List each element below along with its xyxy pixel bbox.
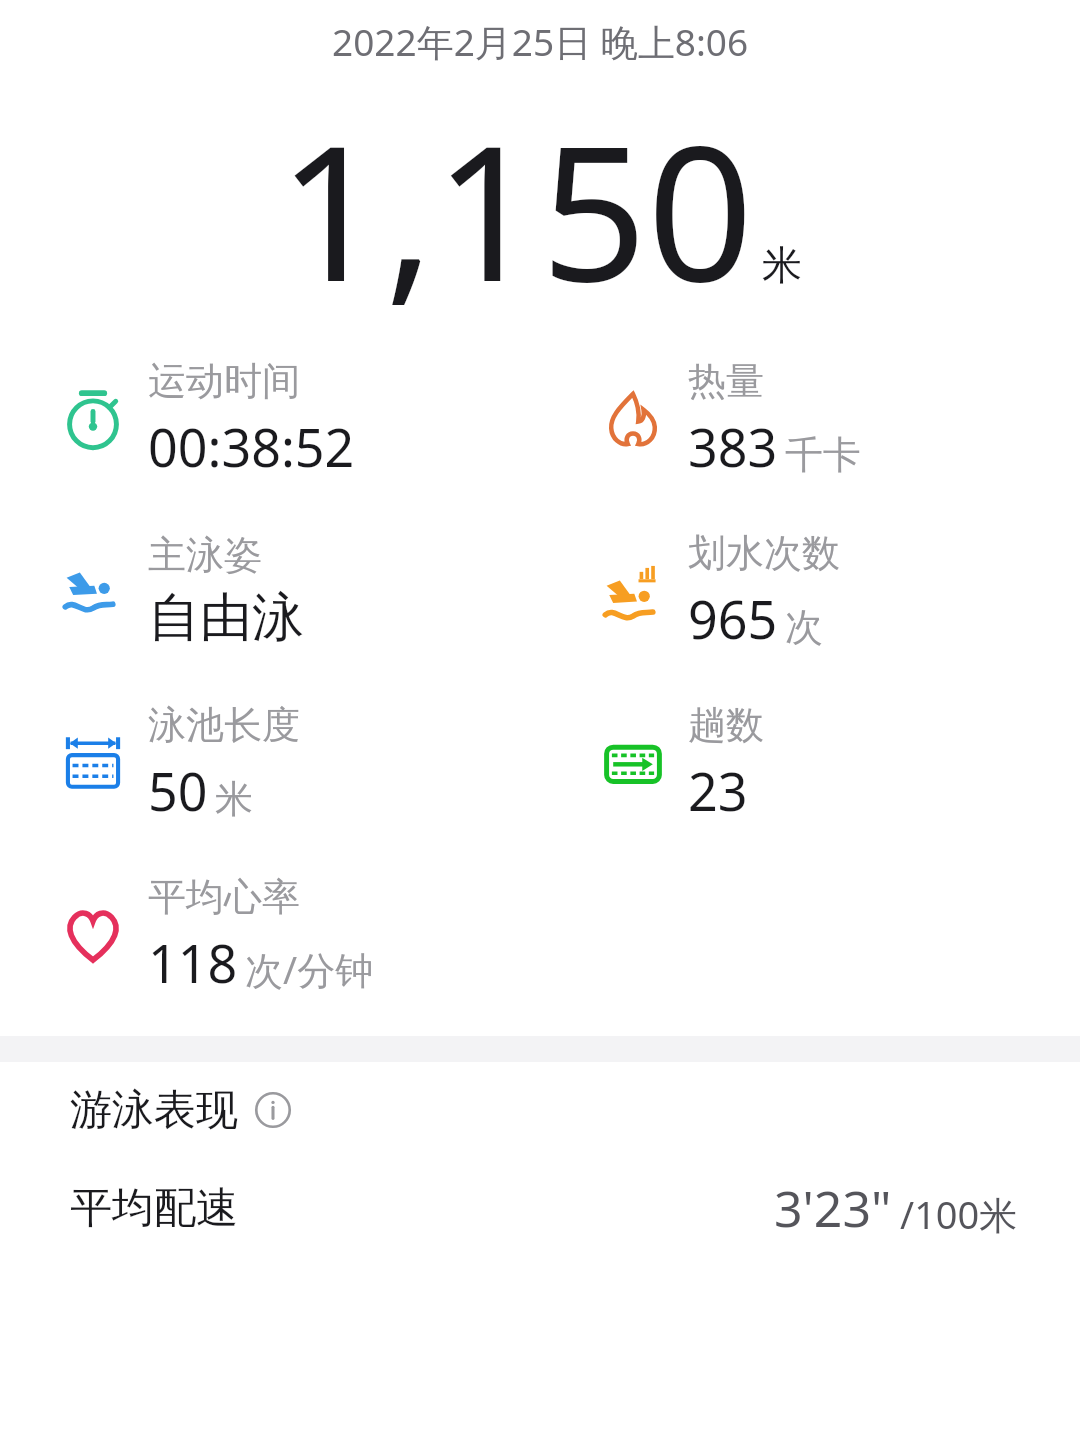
- staticText: 383: [688, 411, 778, 482]
- staticText: 次/分钟: [245, 943, 374, 995]
- other: Pool length: [60, 730, 126, 796]
- button[interactable]: 平均配速: [0, 1158, 1080, 1258]
- staticText: 划水次数: [688, 529, 840, 577]
- staticText: 游泳表现: [70, 1084, 238, 1137]
- button[interactable]: Calories: [540, 354, 1080, 484]
- staticText: 平均配速: [70, 1182, 238, 1235]
- staticText: 50: [148, 755, 208, 826]
- staticText: 运动时间: [148, 357, 300, 405]
- staticText: 泳池长度: [148, 701, 300, 749]
- staticText: 热量: [688, 357, 764, 405]
- staticText: 主泳姿: [148, 531, 262, 579]
- button[interactable]: Strokes: [540, 526, 1080, 656]
- button[interactable]: Average heart rate: [0, 870, 540, 1000]
- staticText: 00:38:52: [148, 411, 355, 482]
- button[interactable]: 游泳表现: [0, 1062, 1080, 1158]
- staticText: 米: [215, 775, 253, 823]
- other: Calories: [600, 386, 666, 452]
- staticText: 趟数: [688, 701, 764, 749]
- other: Duration: [60, 386, 126, 452]
- button[interactable]: Pool length: [0, 698, 540, 828]
- button[interactable]: Stroke: [0, 526, 540, 656]
- staticText: 118: [148, 927, 238, 998]
- other: Info: [254, 1091, 292, 1129]
- other: Stroke: [60, 558, 126, 624]
- button[interactable]: Laps: [540, 698, 1080, 828]
- staticText: /100米: [900, 1188, 1018, 1240]
- other: Strokes: [600, 558, 666, 624]
- staticText: 3'23": [774, 1174, 892, 1242]
- staticText: 23: [688, 755, 748, 826]
- staticText: 965: [688, 583, 778, 654]
- other: Average heart rate: [60, 902, 126, 968]
- staticText: 米: [762, 240, 802, 290]
- staticText: 平均心率: [148, 873, 300, 921]
- other: Laps: [600, 730, 666, 796]
- staticText: 2022年2月25日 晚上8:06: [332, 16, 749, 67]
- staticText: 千卡: [785, 431, 861, 479]
- staticText: 1,150: [278, 82, 754, 312]
- staticText: 次: [785, 603, 823, 651]
- button[interactable]: Duration: [0, 354, 540, 484]
- staticText: 自由泳: [148, 585, 304, 651]
